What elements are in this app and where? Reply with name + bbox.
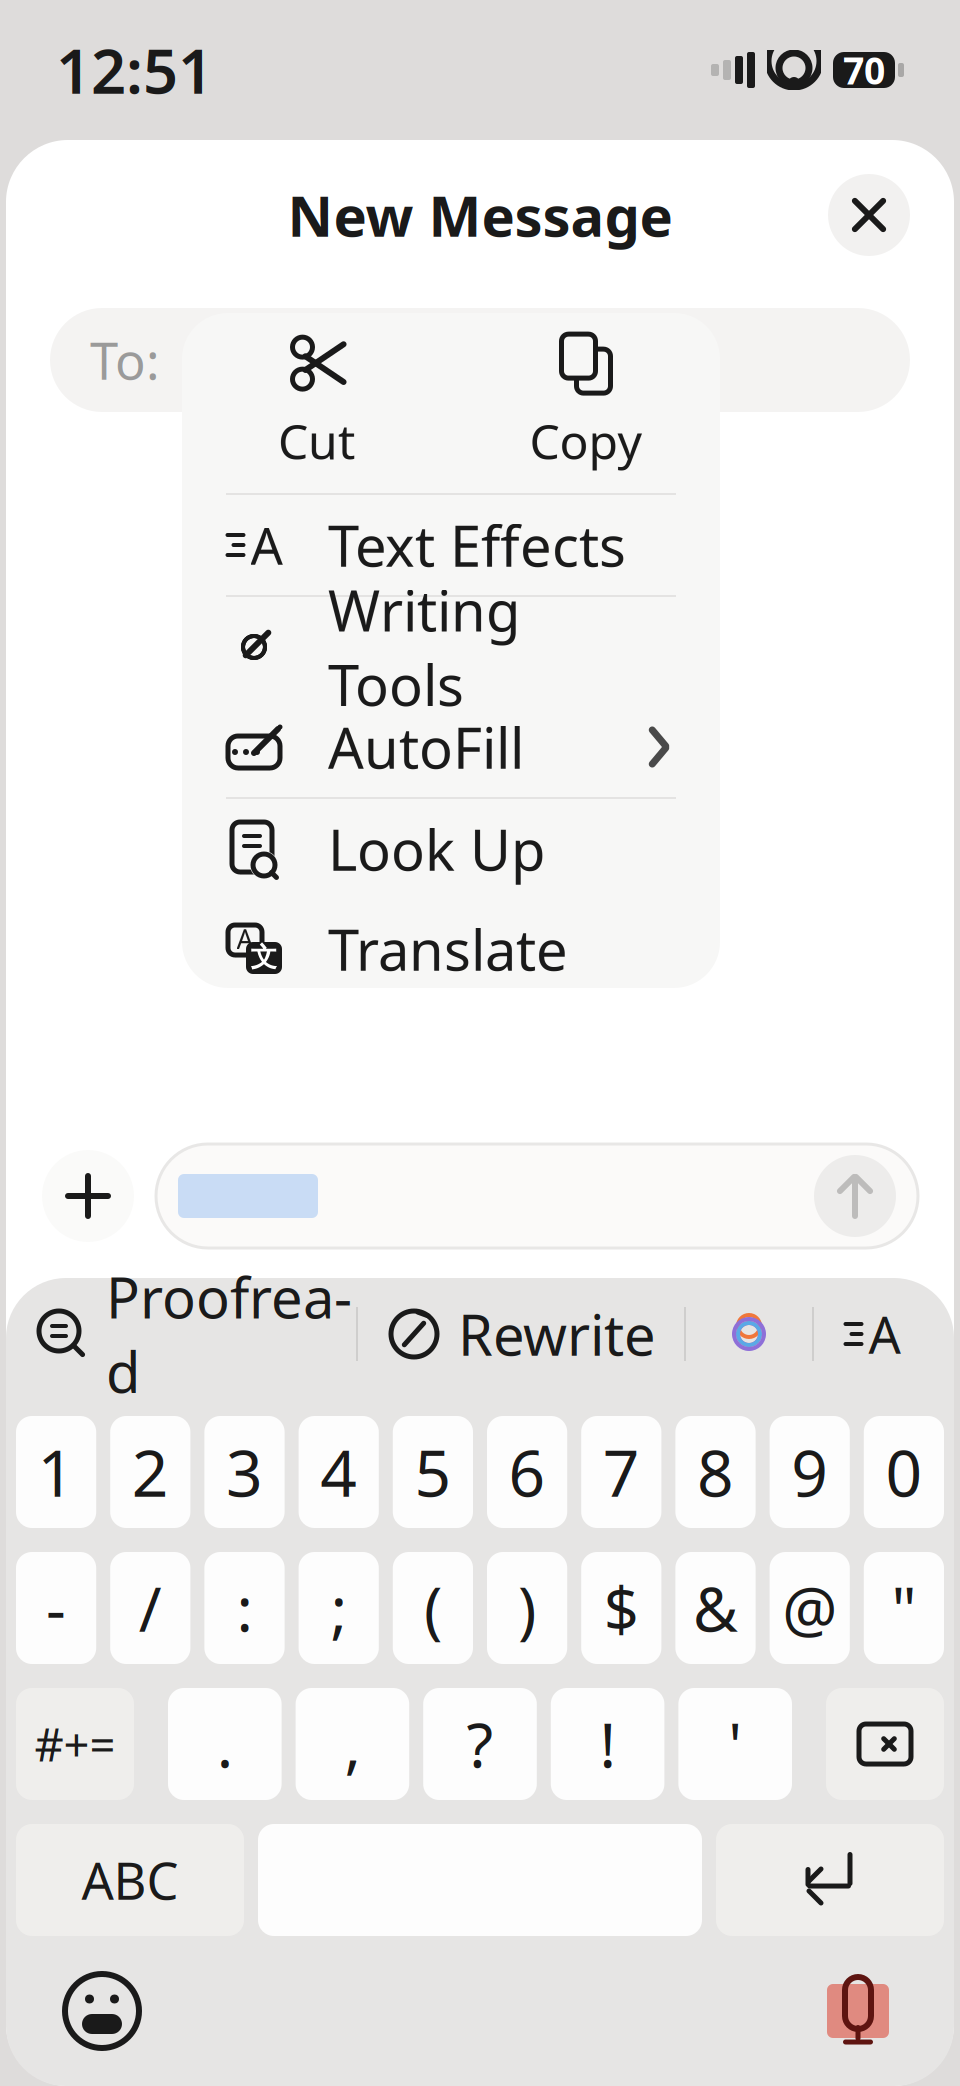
button[interactable]: , bbox=[296, 1688, 409, 1800]
staticText: Text Effects bbox=[328, 508, 626, 582]
staticText: Speak bbox=[328, 1114, 486, 1188]
button[interactable]: " bbox=[864, 1552, 944, 1664]
button[interactable]: Rewrite bbox=[358, 1289, 684, 1379]
button[interactable]: #+= bbox=[16, 1688, 134, 1800]
staticText: A bbox=[250, 511, 282, 579]
staticText: Look Up bbox=[328, 812, 545, 886]
staticText: . bbox=[217, 1703, 233, 1785]
button[interactable]: Speak bbox=[182, 1101, 720, 1201]
staticText: ? bbox=[466, 1703, 493, 1785]
button[interactable]: 8 bbox=[675, 1416, 756, 1528]
button[interactable]: 4 bbox=[299, 1416, 379, 1528]
staticText: A bbox=[236, 921, 253, 957]
staticText: 8 bbox=[697, 1429, 734, 1514]
button[interactable]: AutoFill bbox=[182, 697, 720, 797]
button[interactable]: Text formatting bbox=[814, 1289, 930, 1379]
staticText: 12:51 bbox=[56, 29, 213, 111]
button[interactable]: Cut bbox=[182, 313, 451, 493]
staticText: , bbox=[344, 1703, 360, 1785]
button[interactable]: 5 bbox=[393, 1416, 473, 1528]
staticText: Rewrite bbox=[458, 1297, 656, 1371]
staticText: 3 bbox=[226, 1429, 263, 1514]
button[interactable]: Dictate bbox=[810, 1963, 906, 2059]
staticText: 4 bbox=[320, 1429, 357, 1514]
button[interactable]: Writing Tools bbox=[182, 597, 720, 697]
staticText: / bbox=[139, 1567, 162, 1649]
staticText: ) bbox=[518, 1567, 536, 1649]
button[interactable]: Emoji bbox=[54, 1963, 150, 2059]
staticText: 5 bbox=[414, 1429, 451, 1514]
staticText: 文 bbox=[250, 941, 277, 973]
button[interactable]: 0 bbox=[864, 1416, 944, 1528]
staticText: " bbox=[891, 1567, 916, 1649]
staticText: ! bbox=[600, 1703, 616, 1785]
staticText: A bbox=[868, 1300, 900, 1368]
staticText: Copy bbox=[529, 409, 641, 473]
staticText: #+= bbox=[34, 1714, 115, 1774]
staticText: 2 bbox=[132, 1429, 169, 1514]
button[interactable]: Delete bbox=[826, 1688, 944, 1800]
button[interactable]: ) bbox=[487, 1552, 567, 1664]
button[interactable]: 3 bbox=[204, 1416, 285, 1528]
button[interactable]: ! bbox=[551, 1688, 664, 1800]
staticText: 6 bbox=[509, 1429, 546, 1514]
button[interactable]: 6 bbox=[487, 1416, 567, 1528]
button[interactable]: . bbox=[168, 1688, 282, 1800]
button[interactable]: 7 bbox=[581, 1416, 661, 1528]
button[interactable]: @ bbox=[770, 1552, 850, 1664]
button[interactable]: ? bbox=[423, 1688, 537, 1800]
button[interactable]: A bbox=[182, 495, 720, 595]
button[interactable]: 1 bbox=[16, 1416, 96, 1528]
staticText: 1 bbox=[38, 1429, 75, 1514]
staticText: Writing Tools bbox=[328, 573, 520, 721]
staticText: Translate bbox=[328, 912, 568, 986]
button[interactable]: 2 bbox=[110, 1416, 190, 1528]
staticText: New Message bbox=[287, 178, 672, 252]
button[interactable]: ' bbox=[678, 1688, 792, 1800]
button[interactable]: Return bbox=[716, 1824, 944, 1936]
button[interactable]: ; bbox=[299, 1552, 379, 1664]
staticText: 70 bbox=[843, 45, 885, 95]
button[interactable]: Proofread bbox=[30, 1289, 356, 1379]
staticText: ABC bbox=[81, 1846, 178, 1914]
button[interactable]: Send bbox=[814, 1155, 896, 1237]
button[interactable]: ( bbox=[393, 1552, 473, 1664]
staticText: - bbox=[46, 1567, 66, 1649]
staticText: 7 bbox=[603, 1429, 640, 1514]
button[interactable]: / bbox=[110, 1552, 190, 1664]
button[interactable]: Apple Intelligence bbox=[686, 1289, 812, 1379]
button[interactable]: $ bbox=[581, 1552, 661, 1664]
button[interactable]: Copy bbox=[451, 313, 720, 493]
staticText: $ bbox=[604, 1567, 639, 1649]
button[interactable]: 9 bbox=[770, 1416, 850, 1528]
staticText: 9 bbox=[791, 1429, 828, 1514]
staticText: AutoFill bbox=[328, 710, 524, 784]
staticText: ' bbox=[728, 1703, 742, 1785]
staticText: & bbox=[693, 1567, 738, 1649]
staticText: ( bbox=[424, 1567, 442, 1649]
button[interactable]: Close bbox=[828, 174, 910, 256]
staticText: @ bbox=[782, 1567, 837, 1649]
staticText: Proofread bbox=[106, 1260, 352, 1408]
button[interactable]: - bbox=[16, 1552, 96, 1664]
staticText: : bbox=[236, 1567, 252, 1649]
button[interactable]: A bbox=[182, 899, 720, 999]
staticText: ; bbox=[331, 1567, 347, 1649]
staticText: To: bbox=[90, 326, 160, 394]
button[interactable]: ABC bbox=[16, 1824, 244, 1936]
button[interactable]: & bbox=[675, 1552, 756, 1664]
button[interactable]: : bbox=[204, 1552, 285, 1664]
button[interactable]: Look Up bbox=[182, 799, 720, 899]
staticText: Cut bbox=[278, 409, 355, 473]
button[interactable]: Add attachment bbox=[42, 1150, 134, 1242]
staticText: 0 bbox=[885, 1429, 922, 1514]
